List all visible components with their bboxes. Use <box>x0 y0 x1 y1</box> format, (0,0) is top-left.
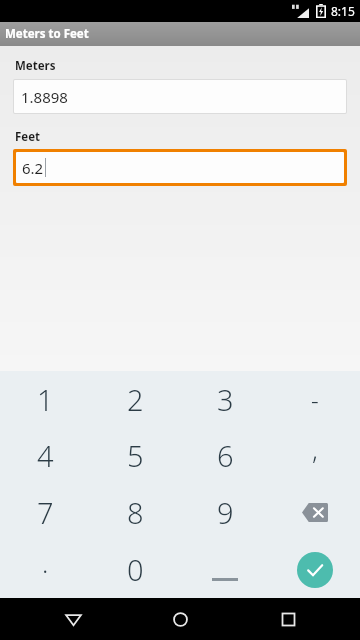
button[interactable]: 6.2 <box>13 149 347 186</box>
staticText: Meters <box>15 58 56 74</box>
button[interactable]: 6 <box>180 427 270 484</box>
button[interactable]: 2 <box>90 371 180 427</box>
staticText: , <box>312 432 318 467</box>
staticText: 4 <box>37 436 54 475</box>
button[interactable]: 5 <box>90 427 180 484</box>
button[interactable]: Space <box>180 541 270 598</box>
staticText: 1.8898 <box>21 87 68 107</box>
button[interactable]: Back <box>38 598 108 640</box>
staticText: 0 <box>127 550 144 589</box>
staticText: Meters to Feet <box>5 26 89 42</box>
button[interactable]: Home <box>145 598 215 640</box>
staticText: Feet <box>15 129 41 145</box>
button[interactable]: 4 <box>0 427 90 484</box>
button[interactable]: Backspace <box>270 484 360 541</box>
staticText: 3 <box>217 380 234 419</box>
staticText: . <box>42 545 49 580</box>
staticText: 8:15 <box>331 3 355 19</box>
staticText: - <box>311 383 319 416</box>
button[interactable]: . <box>0 541 90 598</box>
staticText: 6.2 <box>22 158 44 178</box>
button[interactable]: 1 <box>0 371 90 427</box>
staticText: 9 <box>217 493 234 532</box>
staticText: 2 <box>127 380 144 419</box>
staticText: 7 <box>37 493 54 532</box>
staticText: 5 <box>127 436 144 475</box>
staticText: 1 <box>37 380 54 419</box>
button[interactable]: 9 <box>180 484 270 541</box>
button[interactable]: 0 <box>90 541 180 598</box>
staticText: 6 <box>217 436 234 475</box>
button[interactable]: 1.8898 <box>13 79 347 114</box>
button[interactable]: - <box>270 371 360 427</box>
staticText: 8 <box>127 493 144 532</box>
button[interactable]: Done <box>270 541 360 598</box>
button[interactable]: 3 <box>180 371 270 427</box>
button[interactable]: 8 <box>90 484 180 541</box>
button[interactable]: , <box>270 427 360 484</box>
button[interactable]: 7 <box>0 484 90 541</box>
button[interactable]: Recent apps <box>253 598 323 640</box>
